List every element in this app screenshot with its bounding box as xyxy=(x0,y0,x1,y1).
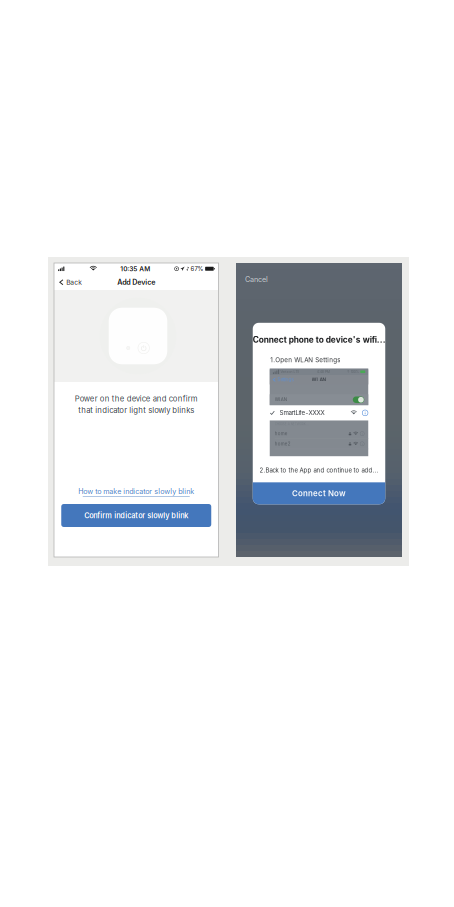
staticText: 67% xyxy=(191,265,204,272)
staticText: Verizon LTE xyxy=(280,370,299,374)
staticText: 2.Back to the App and continue to add... xyxy=(259,467,378,474)
button[interactable]: Back xyxy=(54,274,87,290)
button[interactable]: Cancel xyxy=(242,273,271,286)
staticText: 1.Open WLAN Settings xyxy=(270,356,340,364)
staticText: WLAN xyxy=(311,377,326,383)
staticText: home2 xyxy=(275,441,291,446)
staticText: Cancel xyxy=(245,275,268,284)
staticText: How to make indicator slowly blink xyxy=(78,487,194,496)
staticText: ↑ 100% xyxy=(347,370,359,374)
button[interactable]: How to make indicator slowly blink xyxy=(74,485,198,498)
staticText: Connect Now xyxy=(292,488,346,498)
staticText: SmartLife-XXXX xyxy=(280,409,325,417)
staticText: 4:48 PM xyxy=(317,370,330,374)
staticText: Back xyxy=(66,278,82,286)
staticText: home xyxy=(275,431,288,436)
staticText: Confirm indicator slowly blink xyxy=(84,511,188,520)
staticText: Power on the device and confirm xyxy=(75,394,198,403)
staticText: Add Device xyxy=(117,278,155,287)
button[interactable]: Confirm indicator slowly blink xyxy=(61,504,211,527)
staticText: Settings xyxy=(277,377,293,382)
staticText: 10:35 AM xyxy=(120,265,150,273)
staticText: WLAN xyxy=(275,397,287,402)
staticText: Connect phone to device's wifi... xyxy=(253,335,385,345)
button[interactable]: Connect Now xyxy=(253,482,385,504)
staticText: that indicator light slowly blinks xyxy=(78,406,194,415)
